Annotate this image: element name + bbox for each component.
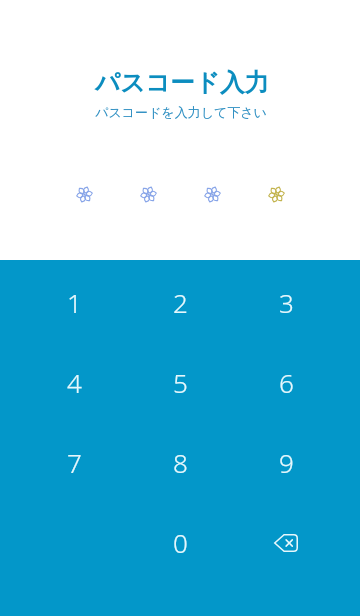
button[interactable]: 4 xyxy=(21,342,127,422)
button[interactable]: 7 xyxy=(21,422,127,502)
button[interactable]: 3 xyxy=(233,262,339,342)
button[interactable]: Backspace, delete one digit xyxy=(233,502,339,582)
staticText: 8 xyxy=(173,445,188,480)
staticText: 2 xyxy=(173,285,188,320)
button[interactable]: 5 xyxy=(127,342,233,422)
staticText: 3 xyxy=(279,285,294,320)
staticText: 5 xyxy=(173,365,188,400)
staticText: 7 xyxy=(67,445,82,480)
button[interactable]: 9 xyxy=(233,422,339,502)
button[interactable]: 8 xyxy=(127,422,233,502)
button[interactable]: 0 xyxy=(127,502,233,582)
button[interactable]: 1 xyxy=(21,262,127,342)
staticText: パスコード入力 xyxy=(2,67,360,98)
staticText: 9 xyxy=(279,445,294,480)
staticText: 4 xyxy=(67,365,82,400)
button[interactable]: 2 xyxy=(127,262,233,342)
staticText: パスコードを入力して下さい xyxy=(1,104,360,120)
button[interactable]: 6 xyxy=(233,342,339,422)
staticText: 0 xyxy=(173,525,188,560)
staticText: 6 xyxy=(279,365,294,400)
staticText: 1 xyxy=(67,285,82,320)
